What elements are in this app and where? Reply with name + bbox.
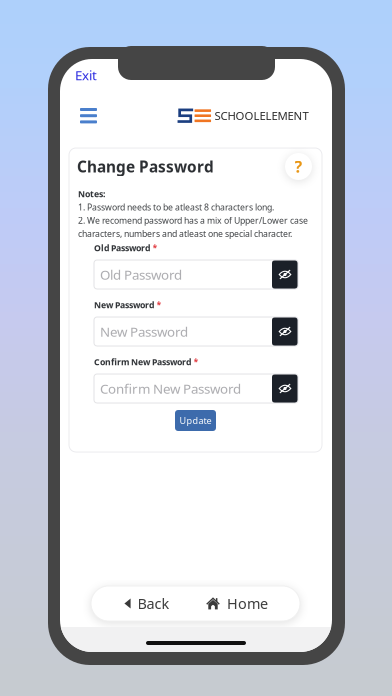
staticText: New Password: [100, 322, 188, 341]
staticText: Update: [179, 414, 211, 427]
staticText: Change Password: [77, 156, 214, 177]
staticText: 1. Password needs to be atleast 8 charac…: [78, 201, 274, 213]
button[interactable]: Home: [188, 586, 285, 621]
button[interactable]: Show Confirm New Password: [272, 374, 298, 403]
button[interactable]: Menu: [60, 59, 111, 133]
button[interactable]: Exit: [60, 59, 109, 90]
staticText: New Password: [94, 299, 154, 311]
button[interactable]: Show Old Password: [272, 260, 298, 289]
staticText: *: [152, 242, 157, 254]
staticText: *: [193, 356, 198, 368]
staticText: Confirm New Password: [100, 379, 241, 398]
staticText: Confirm New Password: [94, 356, 191, 368]
staticText: 2. We recomend password has a mix of Upp…: [78, 214, 308, 226]
staticText: Exit: [75, 66, 97, 84]
button[interactable]: Back: [105, 586, 188, 621]
staticText: ?: [294, 156, 302, 177]
staticText: Notes:: [78, 188, 105, 200]
staticText: Old Password: [100, 265, 182, 284]
staticText: *: [156, 299, 161, 311]
button[interactable]: Show New Password: [272, 317, 298, 346]
staticText: Home: [227, 594, 268, 613]
button[interactable]: Help: [285, 153, 312, 180]
staticText: characters, numbers and atleast one spec…: [78, 228, 292, 239]
staticText: Back: [138, 594, 170, 613]
staticText: Old Password: [94, 242, 150, 254]
staticText: SCHOOLELEMENT: [214, 108, 308, 123]
button[interactable]: Update: [175, 410, 216, 431]
